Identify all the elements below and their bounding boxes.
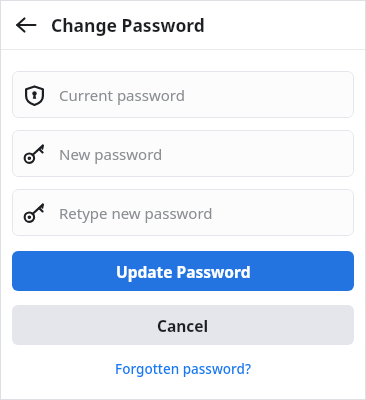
button[interactable]: Back [12,11,40,39]
button[interactable]: New password [12,130,354,177]
button[interactable]: Update Password [12,251,354,291]
staticText: Cancel [157,315,209,336]
staticText: Update Password [116,261,251,282]
staticText: Forgotten password? [115,360,251,378]
staticText: New password [59,144,163,164]
button[interactable]: Retype new password [12,189,354,236]
button[interactable]: Cancel [12,305,354,345]
staticText: Retype new password [59,203,213,223]
staticText: Current password [59,85,185,105]
button[interactable]: Current password [12,71,354,118]
staticText: Change Password [51,13,205,37]
button[interactable]: Forgotten password? [0,355,366,383]
